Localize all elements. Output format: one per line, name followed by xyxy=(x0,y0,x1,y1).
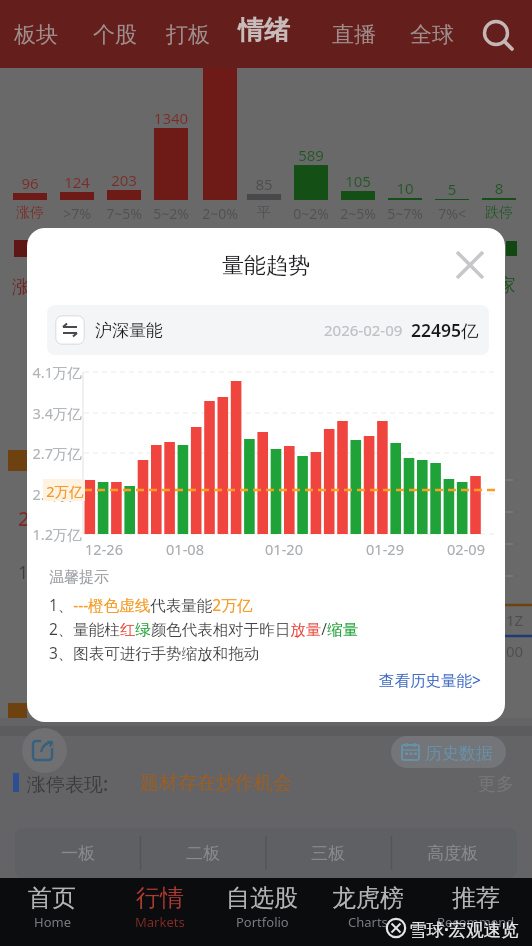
staticText: 高度板 xyxy=(427,843,478,864)
staticText: 02-09 xyxy=(436,539,496,559)
button[interactable]: 板块 xyxy=(14,14,66,54)
button[interactable]: 查看历史量能> xyxy=(281,666,481,692)
staticText: 0~2% xyxy=(281,204,341,223)
staticText: 3.4万亿 xyxy=(27,403,82,423)
button[interactable]: 自选股 xyxy=(207,878,317,946)
staticText: Charts xyxy=(348,913,388,931)
button[interactable]: 一板 xyxy=(15,828,140,878)
staticText: 1340 xyxy=(141,108,201,128)
staticText: 推荐 xyxy=(452,883,500,913)
staticText: 105 xyxy=(328,171,388,191)
staticText: Markets xyxy=(135,913,185,931)
staticText: 行情 xyxy=(136,883,184,913)
staticText: Recommend xyxy=(437,913,515,931)
staticText: 96 xyxy=(0,173,60,193)
button[interactable]: 更多 xyxy=(470,768,526,798)
staticText: 涨 xyxy=(12,276,30,299)
button[interactable]: 沪深量能 xyxy=(47,305,489,355)
staticText: 10 xyxy=(375,178,435,198)
button[interactable]: 直播 xyxy=(332,14,384,54)
staticText: 2~0% xyxy=(190,204,250,223)
staticText: 雪球·宏观速览 xyxy=(409,917,519,941)
staticText: 涨停表现: xyxy=(27,771,109,797)
button[interactable]: 二板 xyxy=(140,828,265,878)
button[interactable]: 推荐 xyxy=(421,878,531,946)
staticText: 2~5% xyxy=(328,204,388,223)
staticText: 01-20 xyxy=(254,539,314,559)
staticText: 首页 xyxy=(28,883,76,913)
button[interactable] xyxy=(450,245,490,285)
staticText: 量能趋势 xyxy=(27,252,505,280)
staticText: 历史数据 xyxy=(425,743,493,764)
button[interactable]: 个股 xyxy=(93,14,145,54)
staticText: 情绪 xyxy=(238,14,290,47)
staticText: 2 xyxy=(18,505,30,532)
staticText: 2.2万亿 xyxy=(27,484,82,504)
staticText: 5 xyxy=(422,179,482,199)
staticText: 3、图表可进行手势缩放和拖动 xyxy=(49,642,260,663)
staticText: 题材存在炒作机会 xyxy=(140,771,292,795)
staticText: 12-26 xyxy=(74,539,134,559)
staticText: Portfolio xyxy=(236,913,289,931)
staticText: Home xyxy=(34,913,71,931)
button[interactable]: 首页 xyxy=(0,878,107,946)
staticText: 温馨提示 xyxy=(49,568,109,587)
staticText: 更多 xyxy=(478,773,514,796)
button[interactable]: 三板 xyxy=(265,828,390,878)
staticText: 直播 xyxy=(332,21,376,49)
staticText: 涨停 xyxy=(0,204,60,222)
staticText: 8 xyxy=(469,178,529,198)
staticText: 7%< xyxy=(422,204,482,223)
button[interactable]: 打板 xyxy=(166,14,218,54)
button[interactable]: 高度板 xyxy=(390,828,515,878)
staticText: 5~2% xyxy=(141,204,201,223)
button[interactable] xyxy=(22,728,67,773)
staticText: 7~5% xyxy=(94,204,154,223)
staticText: 2、量能柱红绿颜色代表相对于昨日放量/缩量 xyxy=(49,618,359,639)
staticText: 203 xyxy=(94,170,154,190)
staticText: 查看历史量能> xyxy=(379,669,481,690)
staticText: 一板 xyxy=(61,843,95,864)
staticText: 自选股 xyxy=(226,883,298,913)
staticText: 三板 xyxy=(311,843,345,864)
staticText: 00 xyxy=(506,641,524,661)
staticText: 个股 xyxy=(93,21,137,49)
staticText: 二板 xyxy=(186,843,220,864)
staticText: 01-29 xyxy=(355,539,415,559)
staticText: 打板 xyxy=(166,21,210,49)
staticText: 85 xyxy=(234,174,294,194)
staticText: 跌停 xyxy=(469,204,529,222)
staticText: 1 xyxy=(18,560,29,585)
staticText: 龙虎榜 xyxy=(332,883,404,913)
button[interactable]: 龙虎榜 xyxy=(313,878,423,946)
button[interactable]: 情绪 xyxy=(238,14,300,54)
staticText: 平 xyxy=(234,204,294,222)
staticText: 124 xyxy=(47,172,107,192)
staticText: 01-08 xyxy=(155,539,215,559)
staticText: 1.2万亿 xyxy=(27,524,82,544)
staticText: 2.7万亿 xyxy=(27,443,82,463)
staticText: 全球 xyxy=(410,21,454,49)
button[interactable] xyxy=(478,16,518,56)
staticText: 5~7% xyxy=(375,204,435,223)
staticText: 22495亿 xyxy=(411,318,479,342)
staticText: 家 xyxy=(498,274,516,297)
staticText: 1Z xyxy=(506,610,524,630)
staticText: 2026-02-09 xyxy=(324,320,403,340)
staticText: 1、---橙色虚线代表量能2万亿 xyxy=(49,594,253,615)
staticText: 板块 xyxy=(14,21,58,49)
button[interactable]: 全球 xyxy=(410,14,462,54)
staticText: 589 xyxy=(281,145,341,165)
button[interactable]: 行情 xyxy=(105,878,215,946)
staticText: 2万亿 xyxy=(45,481,85,501)
button[interactable] xyxy=(391,736,506,768)
staticText: >7% xyxy=(47,204,107,223)
staticText: 沪深量能 xyxy=(95,320,163,341)
staticText: 4.1万亿 xyxy=(27,362,82,382)
